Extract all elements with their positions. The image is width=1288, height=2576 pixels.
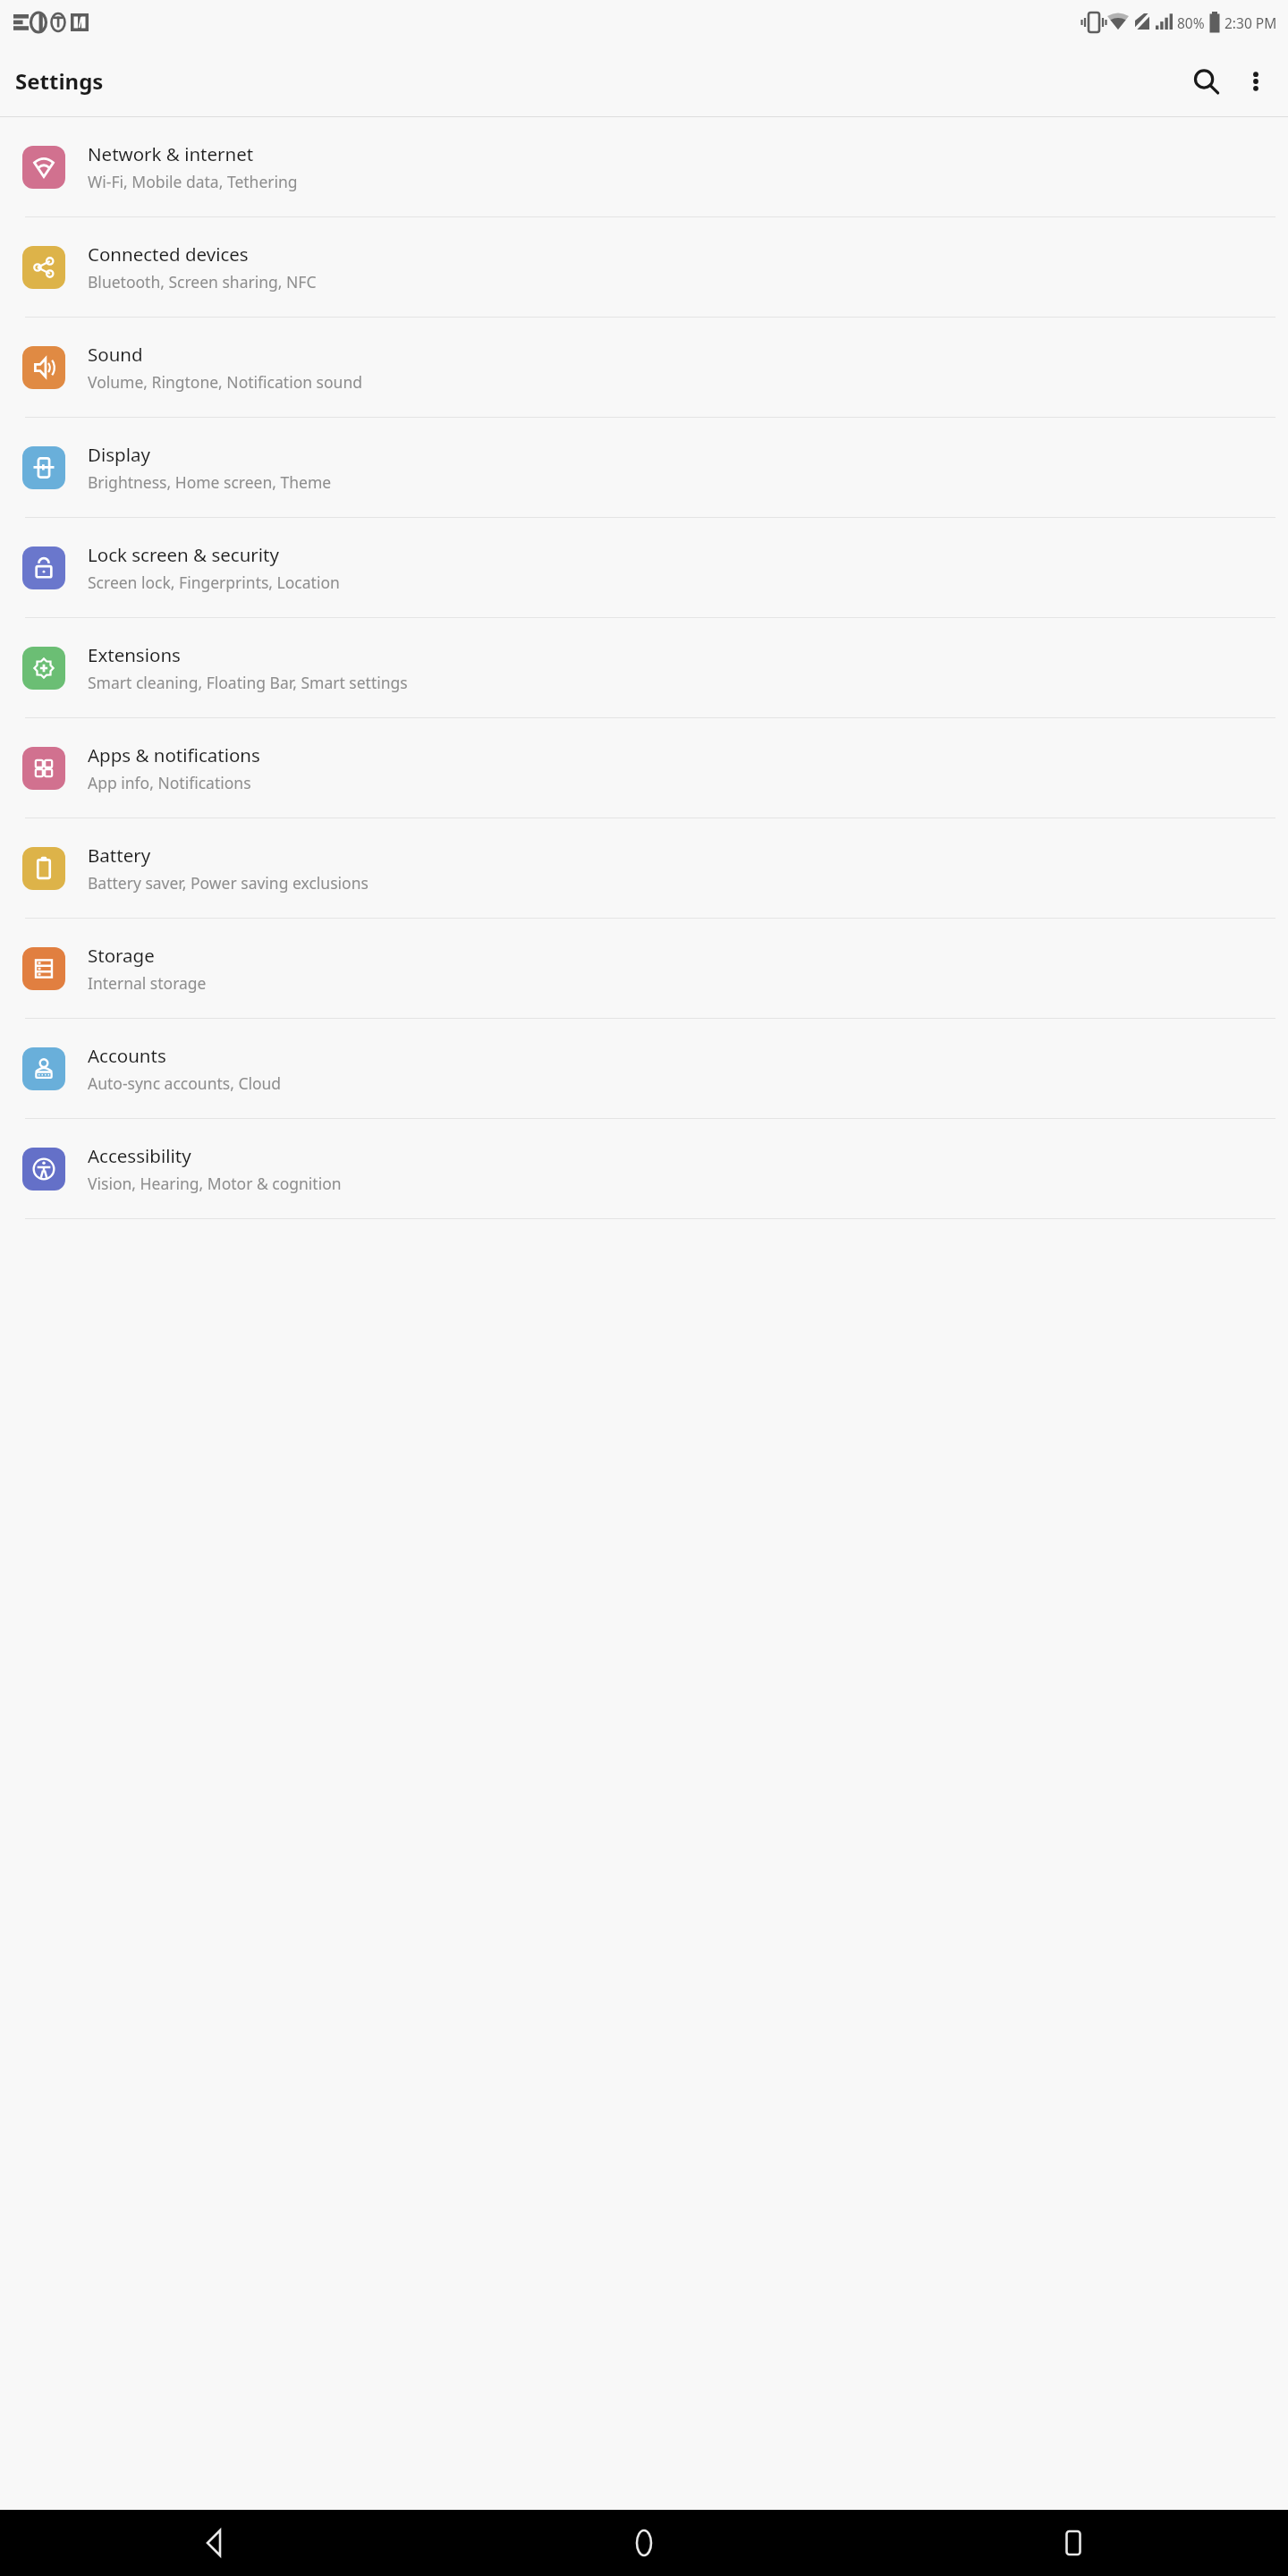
button[interactable]: Storage bbox=[0, 919, 1288, 1018]
button[interactable]: More options bbox=[1231, 56, 1281, 106]
staticText: Screen lock, Fingerprints, Location bbox=[88, 572, 340, 593]
staticText: Bluetooth, Screen sharing, NFC bbox=[88, 271, 317, 292]
staticText: Accounts bbox=[88, 1043, 166, 1068]
staticText: Battery bbox=[88, 843, 151, 868]
staticText: Lock screen & security bbox=[88, 542, 279, 567]
button[interactable]: Connected devices bbox=[0, 217, 1288, 317]
button[interactable]: Accessibility bbox=[0, 1119, 1288, 1218]
staticText: Wi-Fi, Mobile data, Tethering bbox=[88, 171, 298, 192]
staticText: Vision, Hearing, Motor & cognition bbox=[88, 1173, 342, 1194]
staticText: Battery saver, Power saving exclusions bbox=[88, 872, 369, 894]
staticText: Volume, Ringtone, Notification sound bbox=[88, 371, 362, 393]
staticText: 80% bbox=[1177, 13, 1205, 32]
staticText: Connected devices bbox=[88, 241, 249, 267]
staticText: Accessibility bbox=[88, 1143, 191, 1168]
button[interactable]: Home bbox=[429, 2510, 859, 2576]
button[interactable]: Accounts bbox=[0, 1019, 1288, 1118]
staticText: Apps & notifications bbox=[88, 742, 260, 767]
staticText: App info, Notifications bbox=[88, 772, 251, 793]
staticText: Extensions bbox=[88, 642, 181, 667]
button[interactable]: Sound bbox=[0, 318, 1288, 417]
staticText: Auto-sync accounts, Cloud bbox=[88, 1072, 282, 1094]
button[interactable]: Lock screen & security bbox=[0, 518, 1288, 617]
button[interactable]: Search bbox=[1181, 56, 1231, 106]
staticText: Smart cleaning, Floating Bar, Smart sett… bbox=[88, 672, 408, 693]
staticText: Network & internet bbox=[88, 141, 254, 166]
staticText: 2:30 PM bbox=[1224, 13, 1277, 32]
button[interactable]: Network & internet bbox=[0, 117, 1288, 216]
staticText: Settings bbox=[15, 66, 104, 96]
staticText: Sound bbox=[88, 342, 143, 367]
button[interactable]: Battery bbox=[0, 818, 1288, 918]
button[interactable]: Apps & notifications bbox=[0, 718, 1288, 818]
staticText: Display bbox=[88, 442, 150, 467]
button[interactable]: Extensions bbox=[0, 618, 1288, 717]
button[interactable]: Display bbox=[0, 418, 1288, 517]
button[interactable]: Back bbox=[0, 2510, 429, 2576]
staticText: Internal storage bbox=[88, 972, 207, 994]
button[interactable]: Recent apps bbox=[859, 2510, 1288, 2576]
staticText: Storage bbox=[88, 943, 155, 968]
staticText: Brightness, Home screen, Theme bbox=[88, 471, 332, 493]
